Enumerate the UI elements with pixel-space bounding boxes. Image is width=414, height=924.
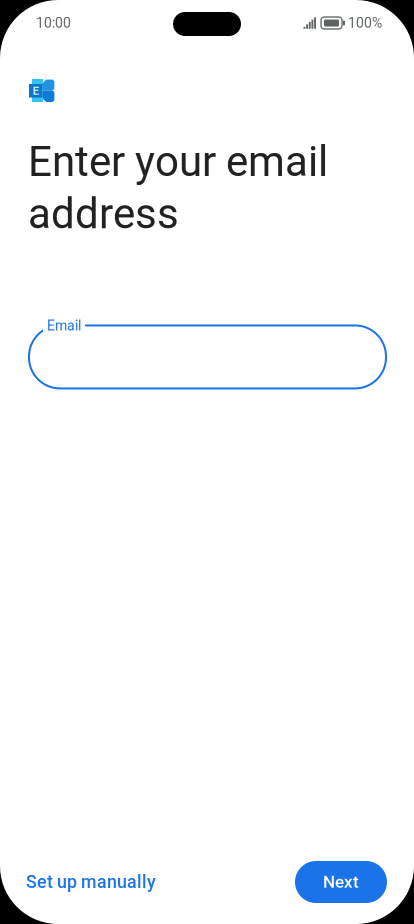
staticText: Enter your email address bbox=[28, 137, 328, 238]
staticText: Email bbox=[47, 317, 81, 334]
button[interactable]: Next bbox=[295, 861, 387, 903]
button[interactable]: Set up manually bbox=[26, 872, 156, 892]
staticText: Set up manually bbox=[26, 872, 156, 892]
staticText: 10:00 bbox=[36, 15, 71, 31]
staticText: E bbox=[33, 84, 39, 97]
staticText: Next bbox=[323, 872, 359, 892]
staticText: 100% bbox=[348, 15, 382, 31]
